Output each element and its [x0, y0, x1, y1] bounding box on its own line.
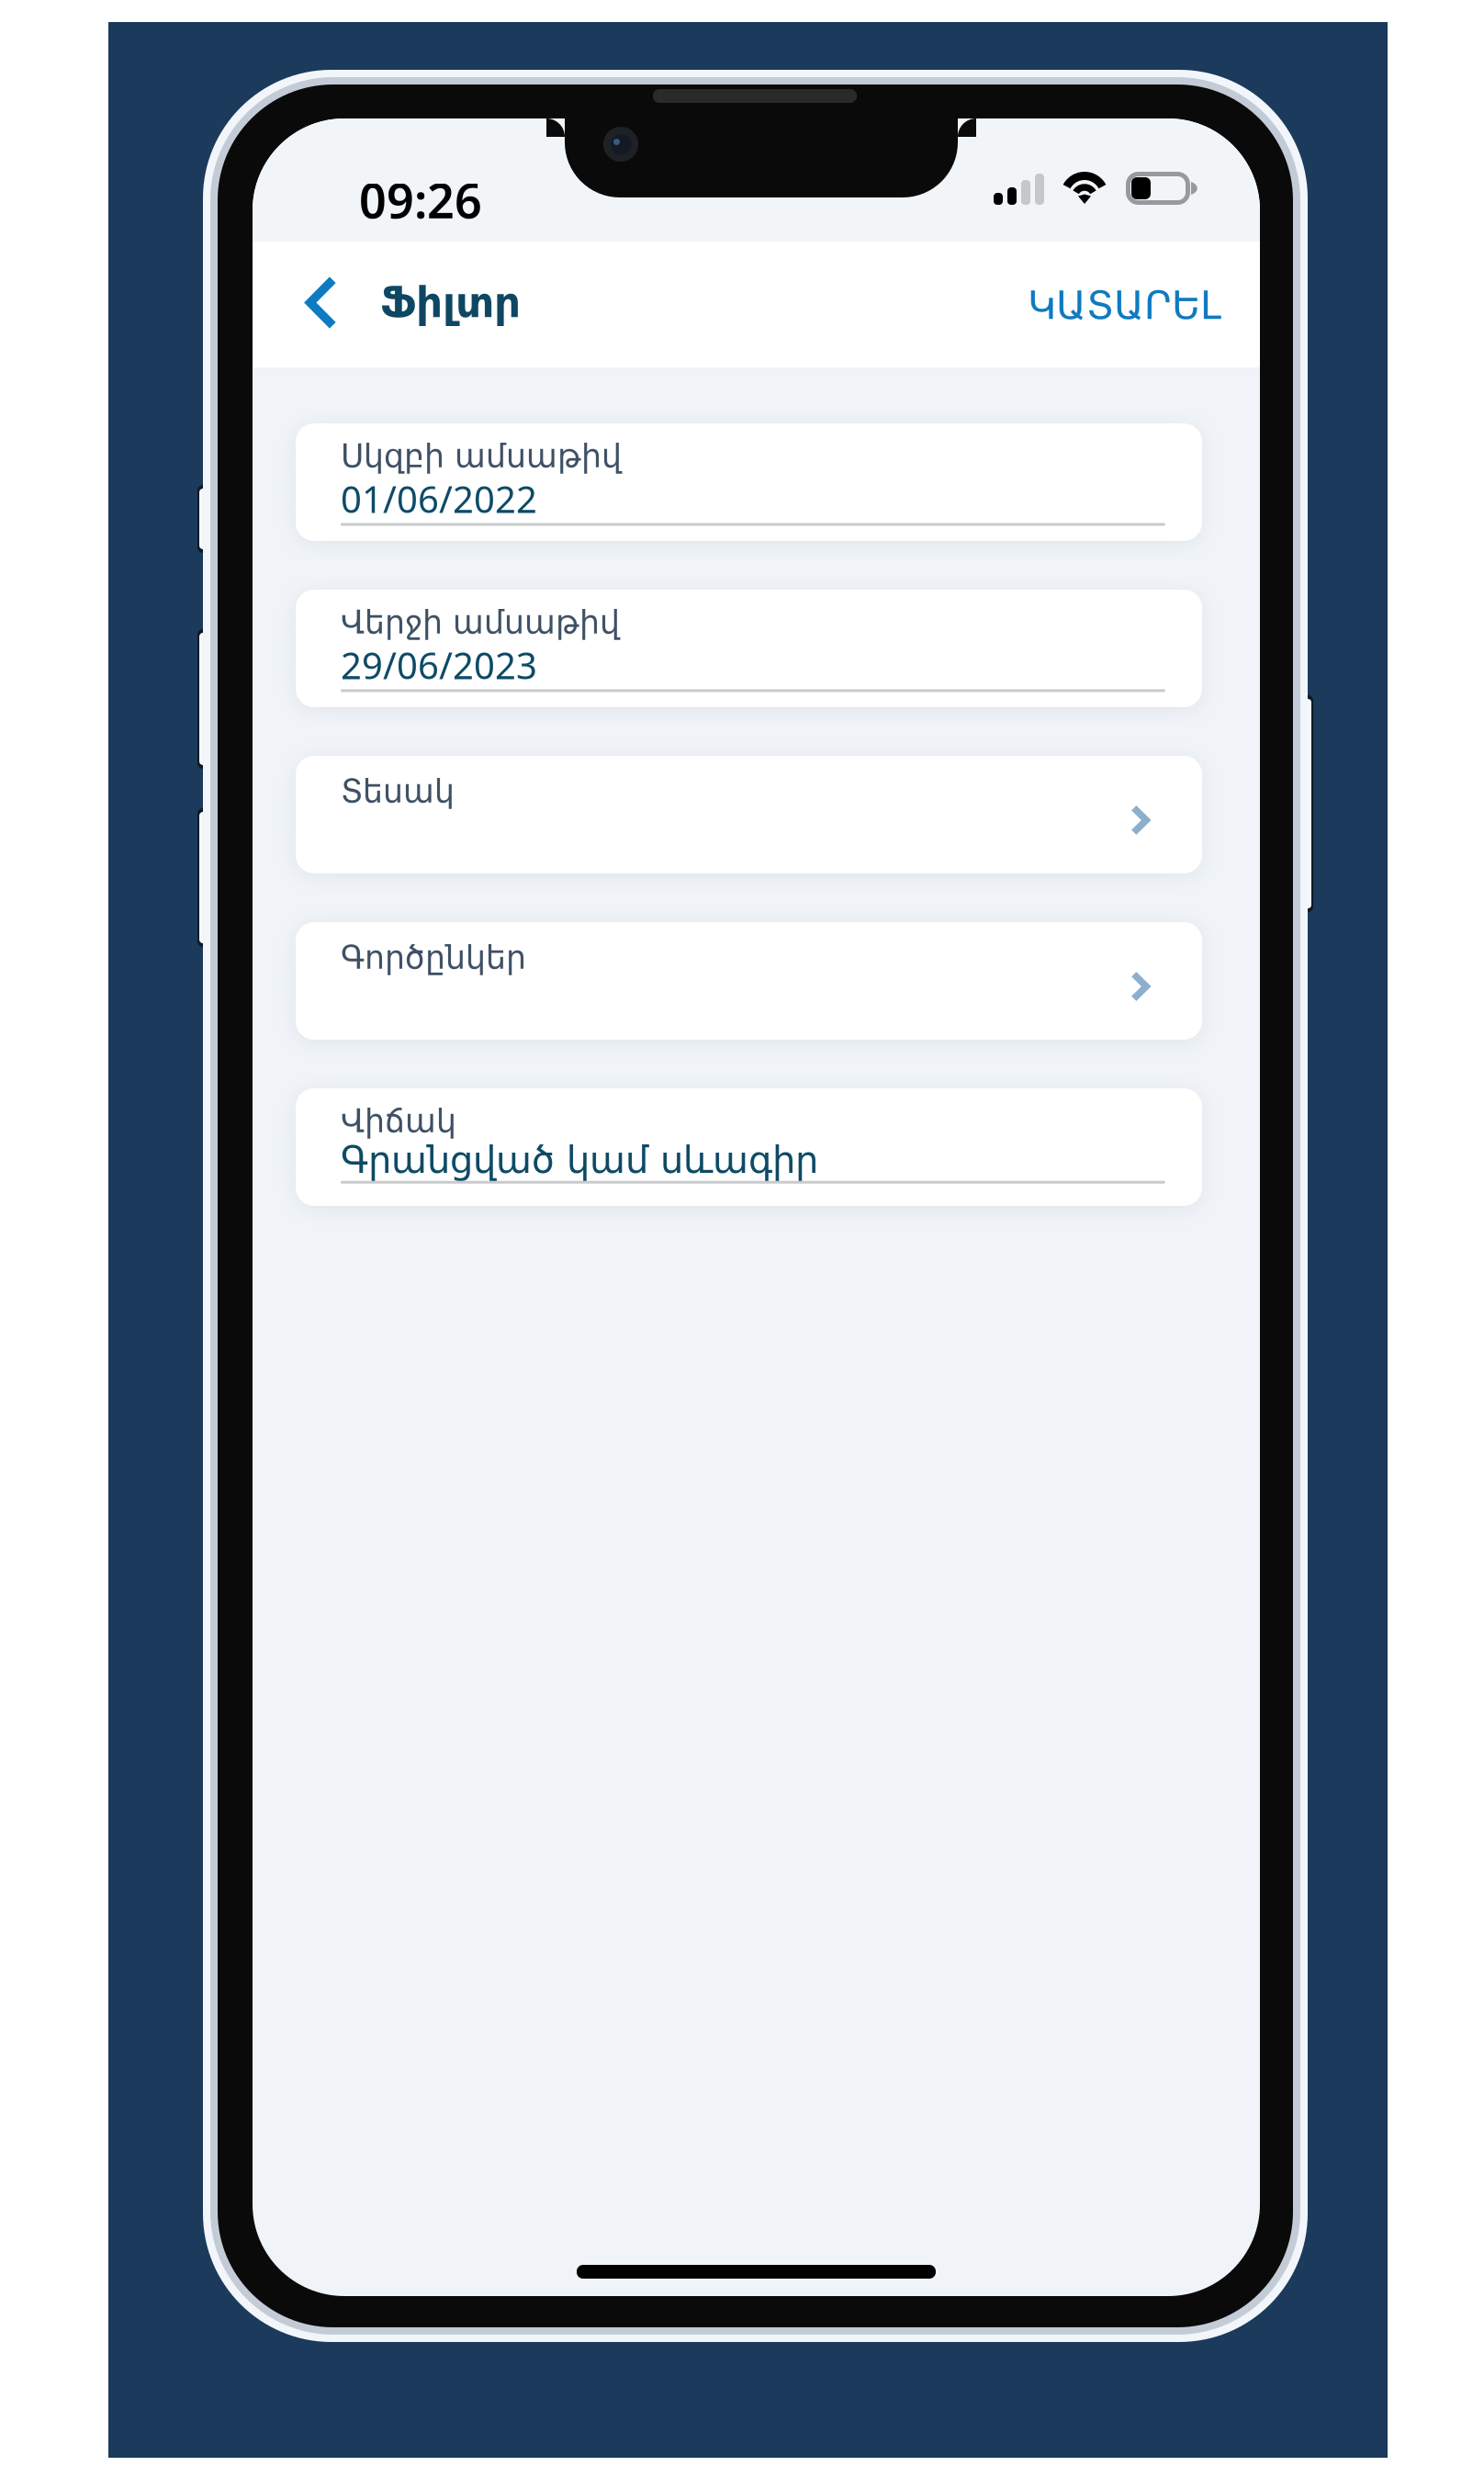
button[interactable]: Տեսակ: [296, 756, 1202, 873]
staticText: 01/06/2022: [341, 474, 537, 523]
staticText: Գործընկեր: [341, 940, 526, 976]
button[interactable]: Վիճակ: [296, 1088, 1202, 1206]
button[interactable]: Սկզբի ամսաթիվ: [296, 423, 1202, 541]
button[interactable]: Վերջի ամսաթիվ: [296, 590, 1202, 707]
staticText: 09:26: [359, 168, 482, 232]
staticText: 29/06/2023: [341, 640, 537, 689]
staticText: Ֆիլտր: [380, 279, 521, 326]
button[interactable]: Ֆիլտր: [253, 242, 620, 367]
button[interactable]: ԿԱՏԱՐԵԼ: [1006, 262, 1243, 347]
staticText: Վերջի ամսաթիվ: [341, 604, 620, 640]
staticText: Տեսակ: [341, 773, 455, 809]
button[interactable]: Գործընկեր: [296, 922, 1202, 1040]
staticText: Սկզբի ամսաթիվ: [341, 438, 622, 474]
staticText: Գրանցված կամ սևագիր: [341, 1139, 818, 1181]
staticText: ԿԱՏԱՐԵԼ: [1028, 283, 1221, 328]
staticText: Վիճակ: [341, 1103, 456, 1139]
